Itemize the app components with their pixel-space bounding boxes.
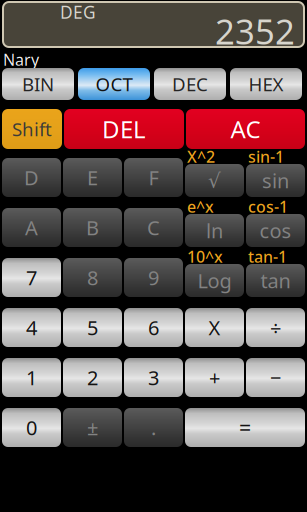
staticText: sin-1: [248, 146, 284, 167]
staticText: BIN: [22, 72, 54, 96]
staticText: 7: [26, 264, 37, 291]
staticText: E: [87, 164, 98, 191]
staticText: √: [208, 169, 221, 192]
button[interactable]: ÷: [246, 308, 305, 347]
button[interactable]: F: [124, 158, 183, 197]
staticText: 6: [148, 314, 159, 341]
button[interactable]: Log: [185, 264, 244, 297]
button[interactable]: −: [246, 358, 305, 397]
button[interactable]: 2: [63, 358, 122, 397]
button[interactable]: Shift: [2, 109, 62, 149]
staticText: 0: [26, 414, 37, 441]
button[interactable]: sin: [246, 164, 305, 197]
button[interactable]: C: [124, 208, 183, 247]
staticText: C: [147, 214, 160, 241]
staticText: 5: [87, 314, 98, 341]
button[interactable]: .: [124, 408, 183, 447]
staticText: ln: [206, 217, 223, 244]
button[interactable]: BIN: [2, 68, 74, 100]
staticText: 9: [148, 264, 159, 291]
staticText: +: [209, 364, 220, 391]
staticText: DEC: [172, 72, 208, 96]
staticText: −: [270, 364, 281, 391]
button[interactable]: 6: [124, 308, 183, 347]
staticText: 2: [87, 364, 98, 391]
button[interactable]: √: [185, 164, 244, 197]
button[interactable]: 8: [63, 258, 122, 297]
staticText: OCT: [95, 72, 132, 96]
button[interactable]: OCT: [78, 68, 150, 100]
staticText: Shift: [12, 117, 52, 141]
staticText: X^2: [187, 146, 215, 167]
button[interactable]: 7: [2, 258, 61, 297]
staticText: e^x: [187, 196, 214, 217]
button[interactable]: tan: [246, 264, 305, 297]
staticText: X: [208, 314, 220, 341]
button[interactable]: +: [185, 358, 244, 397]
button[interactable]: 4: [2, 308, 61, 347]
staticText: =: [239, 413, 251, 442]
staticText: 8: [87, 264, 98, 291]
button[interactable]: 3: [124, 358, 183, 397]
staticText: B: [86, 214, 99, 241]
staticText: 4: [26, 314, 37, 341]
staticText: 3: [148, 364, 159, 391]
staticText: Log: [197, 267, 231, 294]
button[interactable]: DEC: [154, 68, 226, 100]
button[interactable]: =: [185, 408, 305, 447]
staticText: 1: [26, 364, 37, 391]
button[interactable]: D: [2, 158, 61, 197]
button[interactable]: 0: [2, 408, 61, 447]
staticText: ±: [87, 414, 98, 441]
staticText: tan: [260, 267, 290, 294]
button[interactable]: 9: [124, 258, 183, 297]
staticText: F: [148, 164, 158, 191]
button[interactable]: cos: [246, 214, 305, 247]
staticText: cos: [259, 217, 291, 244]
staticText: sin: [262, 167, 289, 194]
button[interactable]: B: [63, 208, 122, 247]
staticText: ÷: [270, 314, 281, 341]
button[interactable]: ln: [185, 214, 244, 247]
button[interactable]: A: [2, 208, 61, 247]
staticText: DEG: [60, 0, 96, 23]
button[interactable]: 5: [63, 308, 122, 347]
staticText: D: [24, 164, 39, 191]
staticText: 10^x: [187, 246, 223, 267]
button[interactable]: AC: [186, 109, 305, 149]
staticText: .: [151, 414, 156, 441]
staticText: Nary: [3, 49, 39, 70]
staticText: DEL: [102, 113, 146, 145]
staticText: AC: [230, 113, 260, 145]
button[interactable]: E: [63, 158, 122, 197]
staticText: cos-1: [248, 196, 288, 217]
button[interactable]: HEX: [230, 68, 302, 100]
staticText: 2352: [215, 8, 295, 54]
staticText: A: [25, 214, 38, 241]
button[interactable]: DEL: [64, 109, 184, 149]
staticText: tan-1: [248, 246, 287, 267]
button[interactable]: X: [185, 308, 244, 347]
button[interactable]: ±: [63, 408, 122, 447]
staticText: HEX: [248, 72, 283, 96]
button[interactable]: 1: [2, 358, 61, 397]
